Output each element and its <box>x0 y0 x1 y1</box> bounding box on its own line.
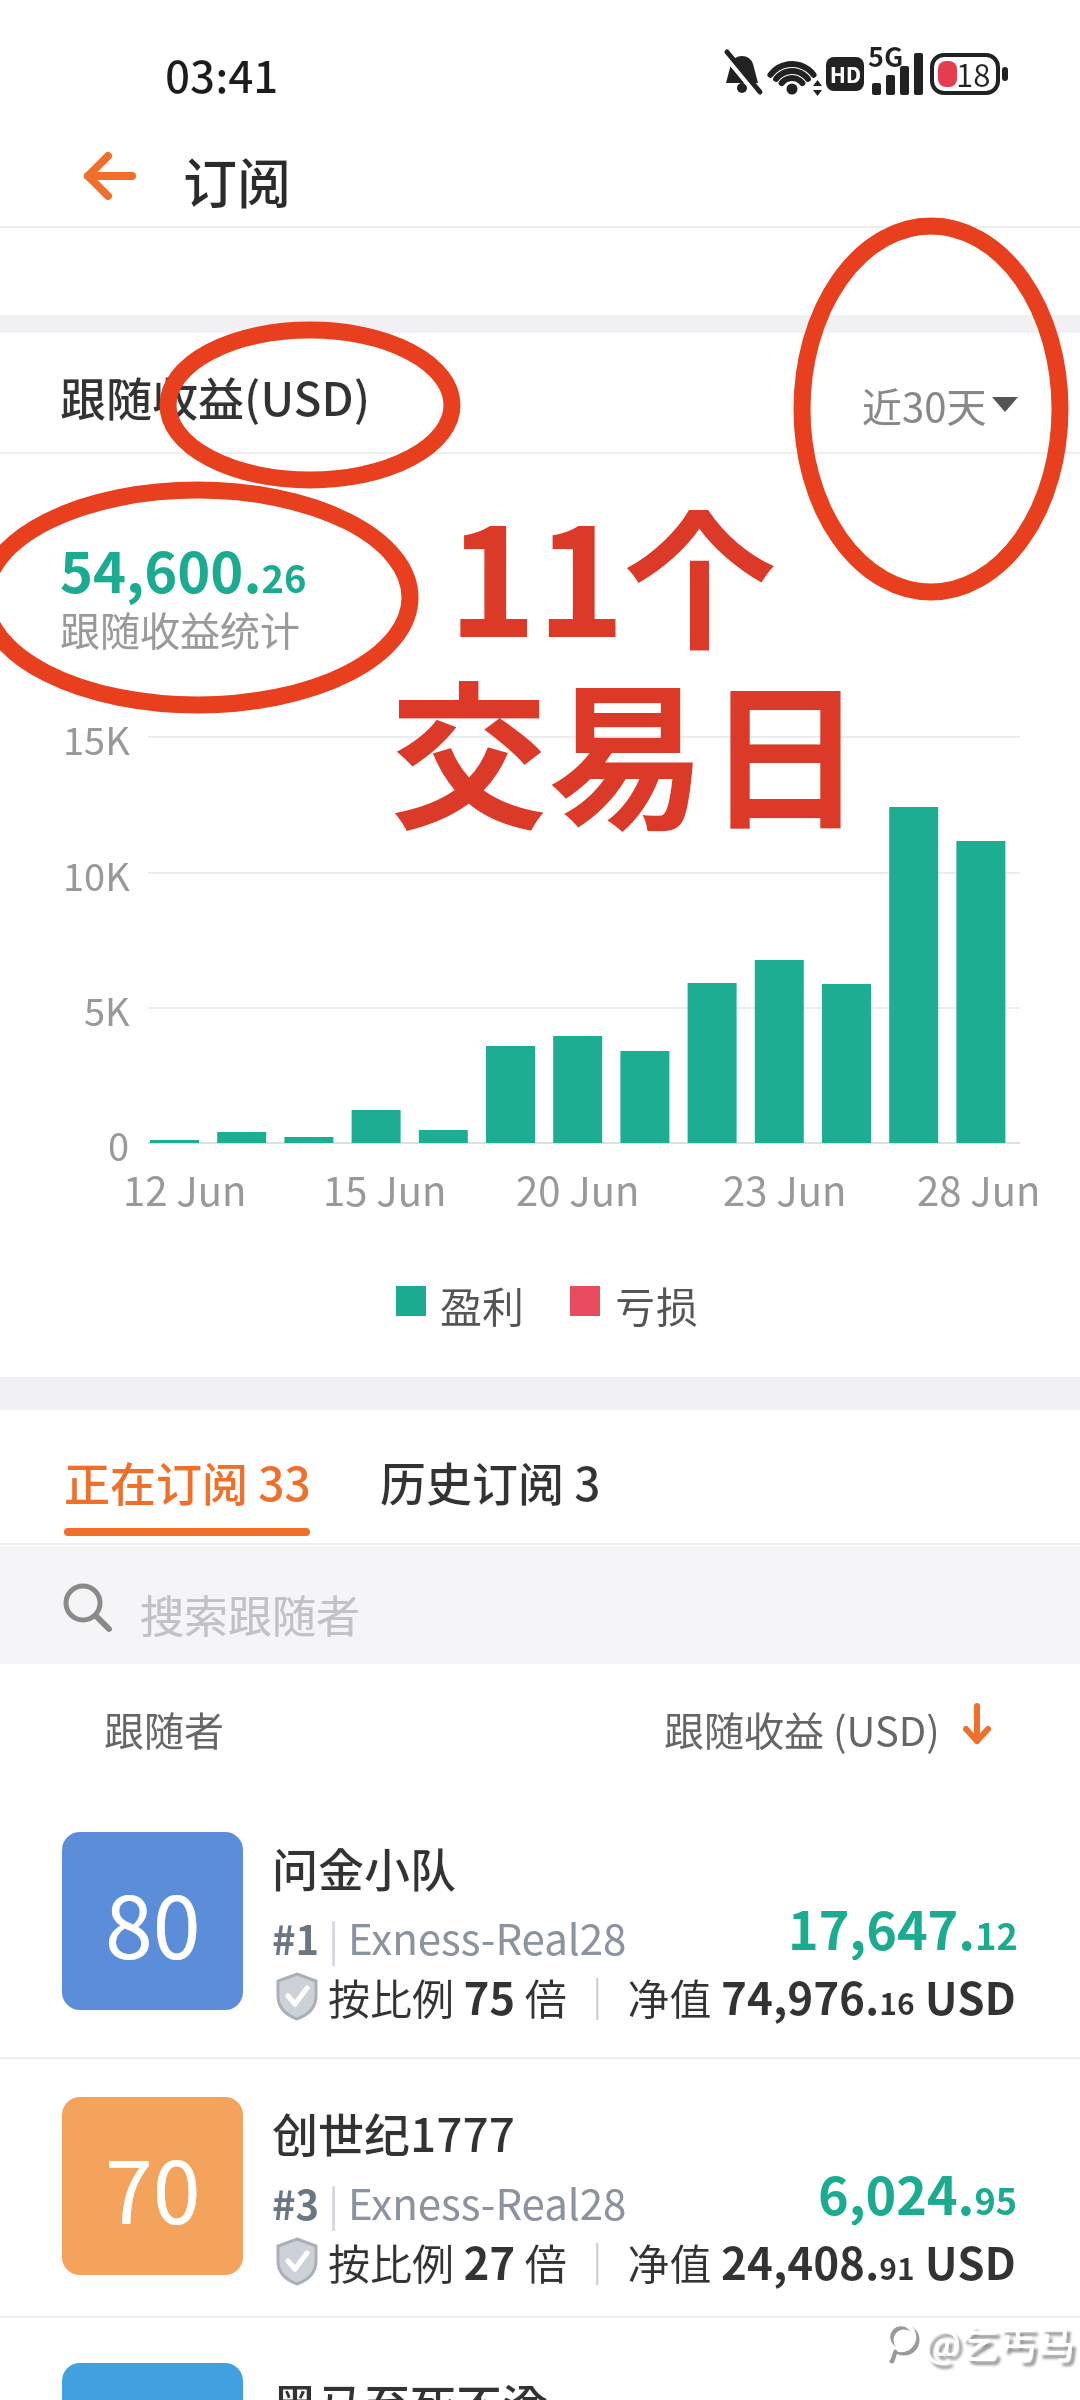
button[interactable] <box>960 1702 994 1748</box>
staticText: 跟随者 <box>104 1700 224 1758</box>
staticText: @乞丐马 <box>924 2314 1075 2369</box>
button[interactable] <box>62 2363 243 2400</box>
staticText: 5G <box>868 36 904 75</box>
staticText: 54,600.26 <box>60 528 307 609</box>
staticText: 15K <box>63 711 130 763</box>
staticText: 跟随收益 (USD) <box>664 1700 940 1758</box>
staticText: 跟随收益统计 <box>60 600 300 658</box>
staticText: 23 Jun <box>723 1160 847 1212</box>
staticText: 11个 <box>448 463 776 680</box>
staticText: #1 | Exness-Real28 <box>272 1906 627 1967</box>
staticText: 跟随收益(USD) <box>60 363 371 430</box>
staticText: 80 <box>105 1859 201 1984</box>
staticText: 5K <box>84 982 130 1034</box>
staticText: 按比例 75 倍 ｜ 净值 74,976.16 USD <box>328 1964 1017 2028</box>
staticText: HD <box>830 59 861 89</box>
button[interactable] <box>64 1430 310 1543</box>
staticText: 交易日 <box>390 633 864 862</box>
staticText: 0 <box>108 1117 130 1169</box>
staticText: 20 Jun <box>516 1160 640 1212</box>
button[interactable] <box>84 150 136 202</box>
button[interactable] <box>0 1546 1080 1664</box>
staticText: 正在订阅 33 <box>64 1448 311 1515</box>
staticText: 订阅 <box>183 141 291 219</box>
staticText: 18 <box>956 51 991 96</box>
staticText: 10K <box>63 847 130 899</box>
staticText: 问金小队 <box>272 1834 456 1901</box>
staticText: 70 <box>105 2124 201 2249</box>
staticText: 按比例 27 倍 ｜ 净值 24,408.91 USD <box>328 2229 1017 2293</box>
staticText: #3 | Exness-Real28 <box>272 2171 627 2232</box>
button[interactable] <box>0 2072 1080 2322</box>
staticText: 盈利 <box>440 1274 525 1335</box>
button[interactable] <box>850 360 1030 430</box>
staticText: 03:41 <box>165 42 279 106</box>
staticText: 15 Jun <box>323 1160 447 1212</box>
button[interactable] <box>0 1807 1080 2057</box>
staticText: 28 Jun <box>917 1160 1041 1212</box>
staticText: 亏损 <box>614 1274 699 1335</box>
button[interactable] <box>380 1430 600 1543</box>
staticText: 历史订阅 3 <box>380 1448 601 1515</box>
staticText: 12 Jun <box>123 1160 247 1212</box>
staticText: 搜索跟随者 <box>140 1582 360 1646</box>
staticText: 6,024.95 <box>818 2155 1018 2225</box>
staticText: 近30天 <box>862 376 987 434</box>
staticText: 黑马至死不渝 <box>272 2370 548 2400</box>
staticText: 创世纪1777 <box>272 2099 515 2166</box>
staticText: 17,647.12 <box>788 1890 1018 1960</box>
